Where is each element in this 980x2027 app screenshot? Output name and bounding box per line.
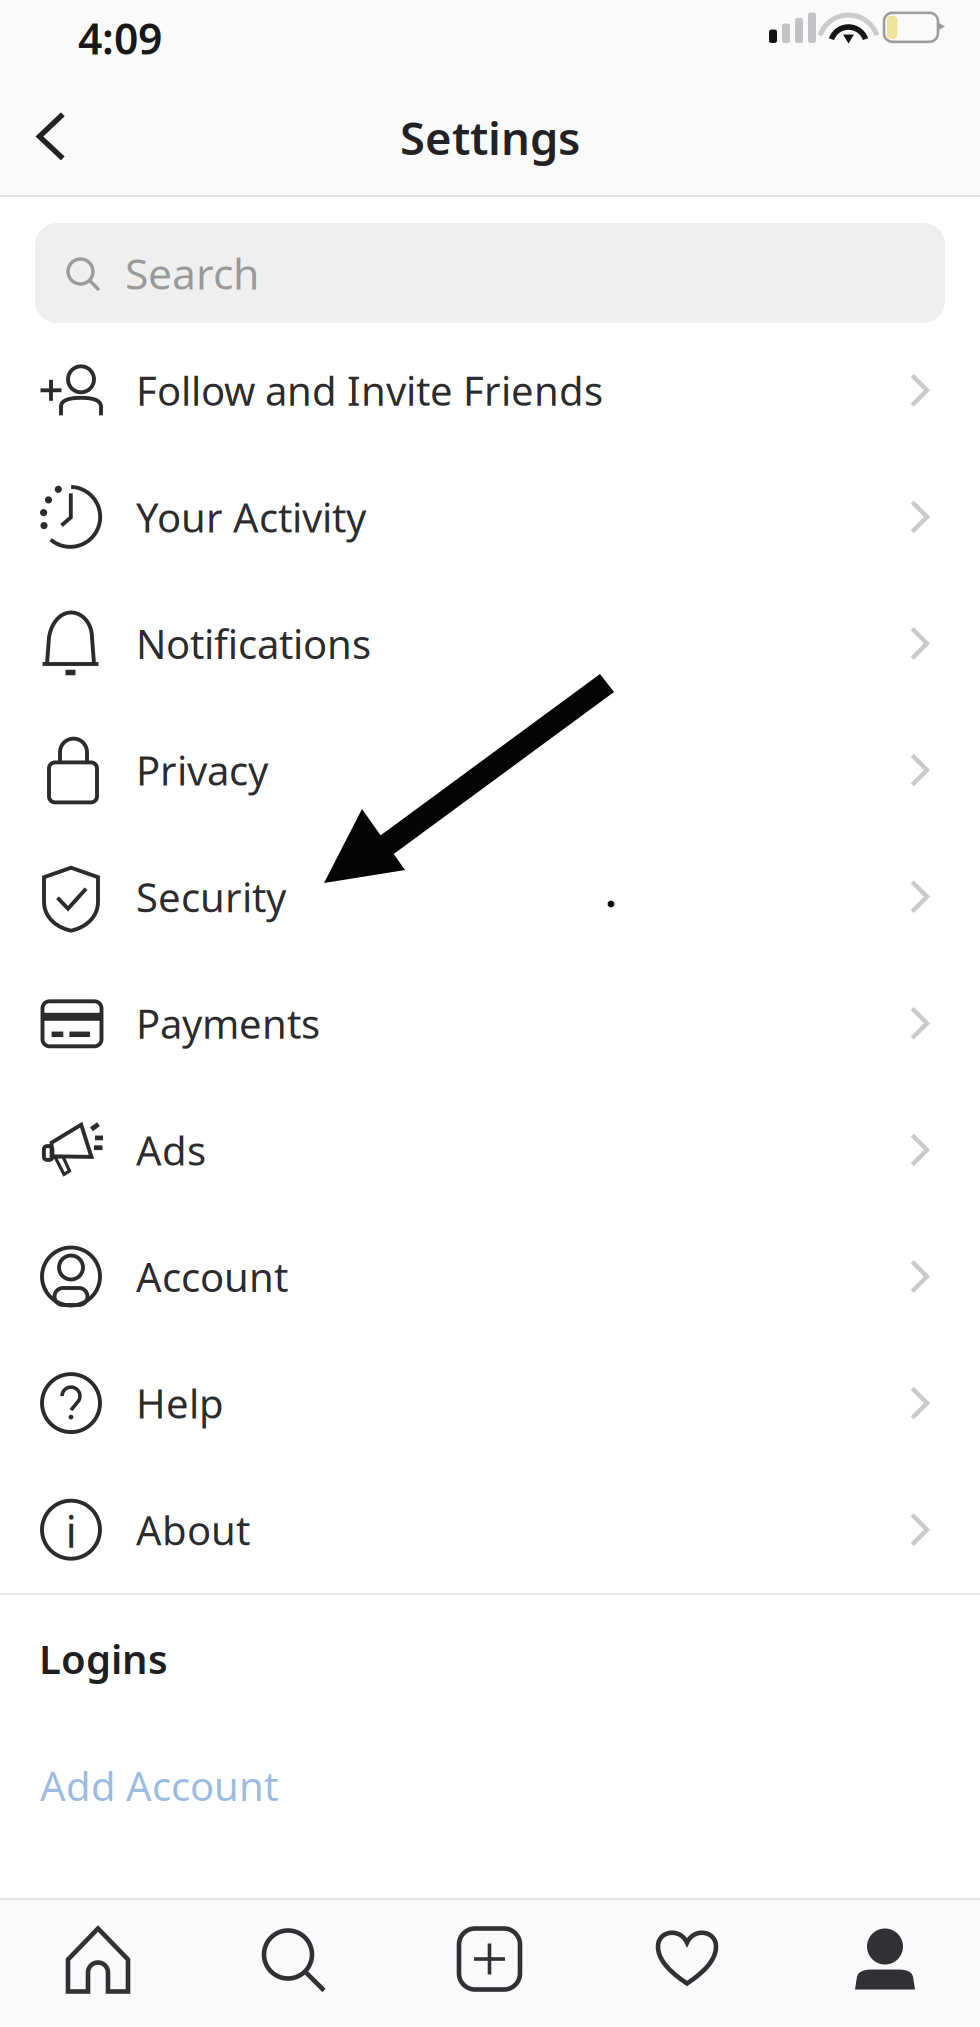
staticText: Privacy xyxy=(136,743,268,797)
button[interactable]: Ads xyxy=(0,1087,980,1213)
button[interactable]: Home xyxy=(0,1900,196,2027)
button[interactable]: i xyxy=(0,1466,980,1593)
button[interactable]: Payments xyxy=(0,960,980,1087)
button[interactable]: Privacy xyxy=(0,707,980,833)
button[interactable]: Security xyxy=(0,833,980,960)
staticText: Your Activity xyxy=(136,490,366,543)
staticText: Follow and Invite Friends xyxy=(136,364,603,417)
staticText: Settings xyxy=(400,107,580,168)
button[interactable]: Add Account xyxy=(0,1722,980,1849)
staticText: Payments xyxy=(136,997,320,1050)
button[interactable]: Your Activity xyxy=(0,454,980,580)
staticText: Account xyxy=(136,1250,288,1303)
staticText: Help xyxy=(136,1376,224,1430)
button[interactable]: Help xyxy=(0,1340,980,1466)
button[interactable]: Search xyxy=(35,223,945,323)
button[interactable]: Profile xyxy=(784,1900,980,2027)
button[interactable]: New Post xyxy=(392,1900,588,2027)
staticText: Search xyxy=(125,245,259,301)
staticText: 4:09 xyxy=(78,10,162,66)
staticText: Logins xyxy=(39,1632,168,1685)
staticText: Ads xyxy=(136,1123,206,1176)
button[interactable]: Activity xyxy=(588,1900,784,2027)
button[interactable]: Follow and Invite Friends xyxy=(0,327,980,454)
button[interactable]: Account xyxy=(0,1213,980,1340)
staticText: Add Account xyxy=(40,1759,278,1812)
staticText: Security xyxy=(136,870,286,923)
button[interactable]: Notifications xyxy=(0,580,980,707)
button[interactable]: Search xyxy=(196,1900,392,2027)
button[interactable]: Back xyxy=(0,78,120,197)
staticText: i xyxy=(65,1501,76,1560)
staticText: Notifications xyxy=(136,617,371,670)
staticText: About xyxy=(136,1503,250,1556)
